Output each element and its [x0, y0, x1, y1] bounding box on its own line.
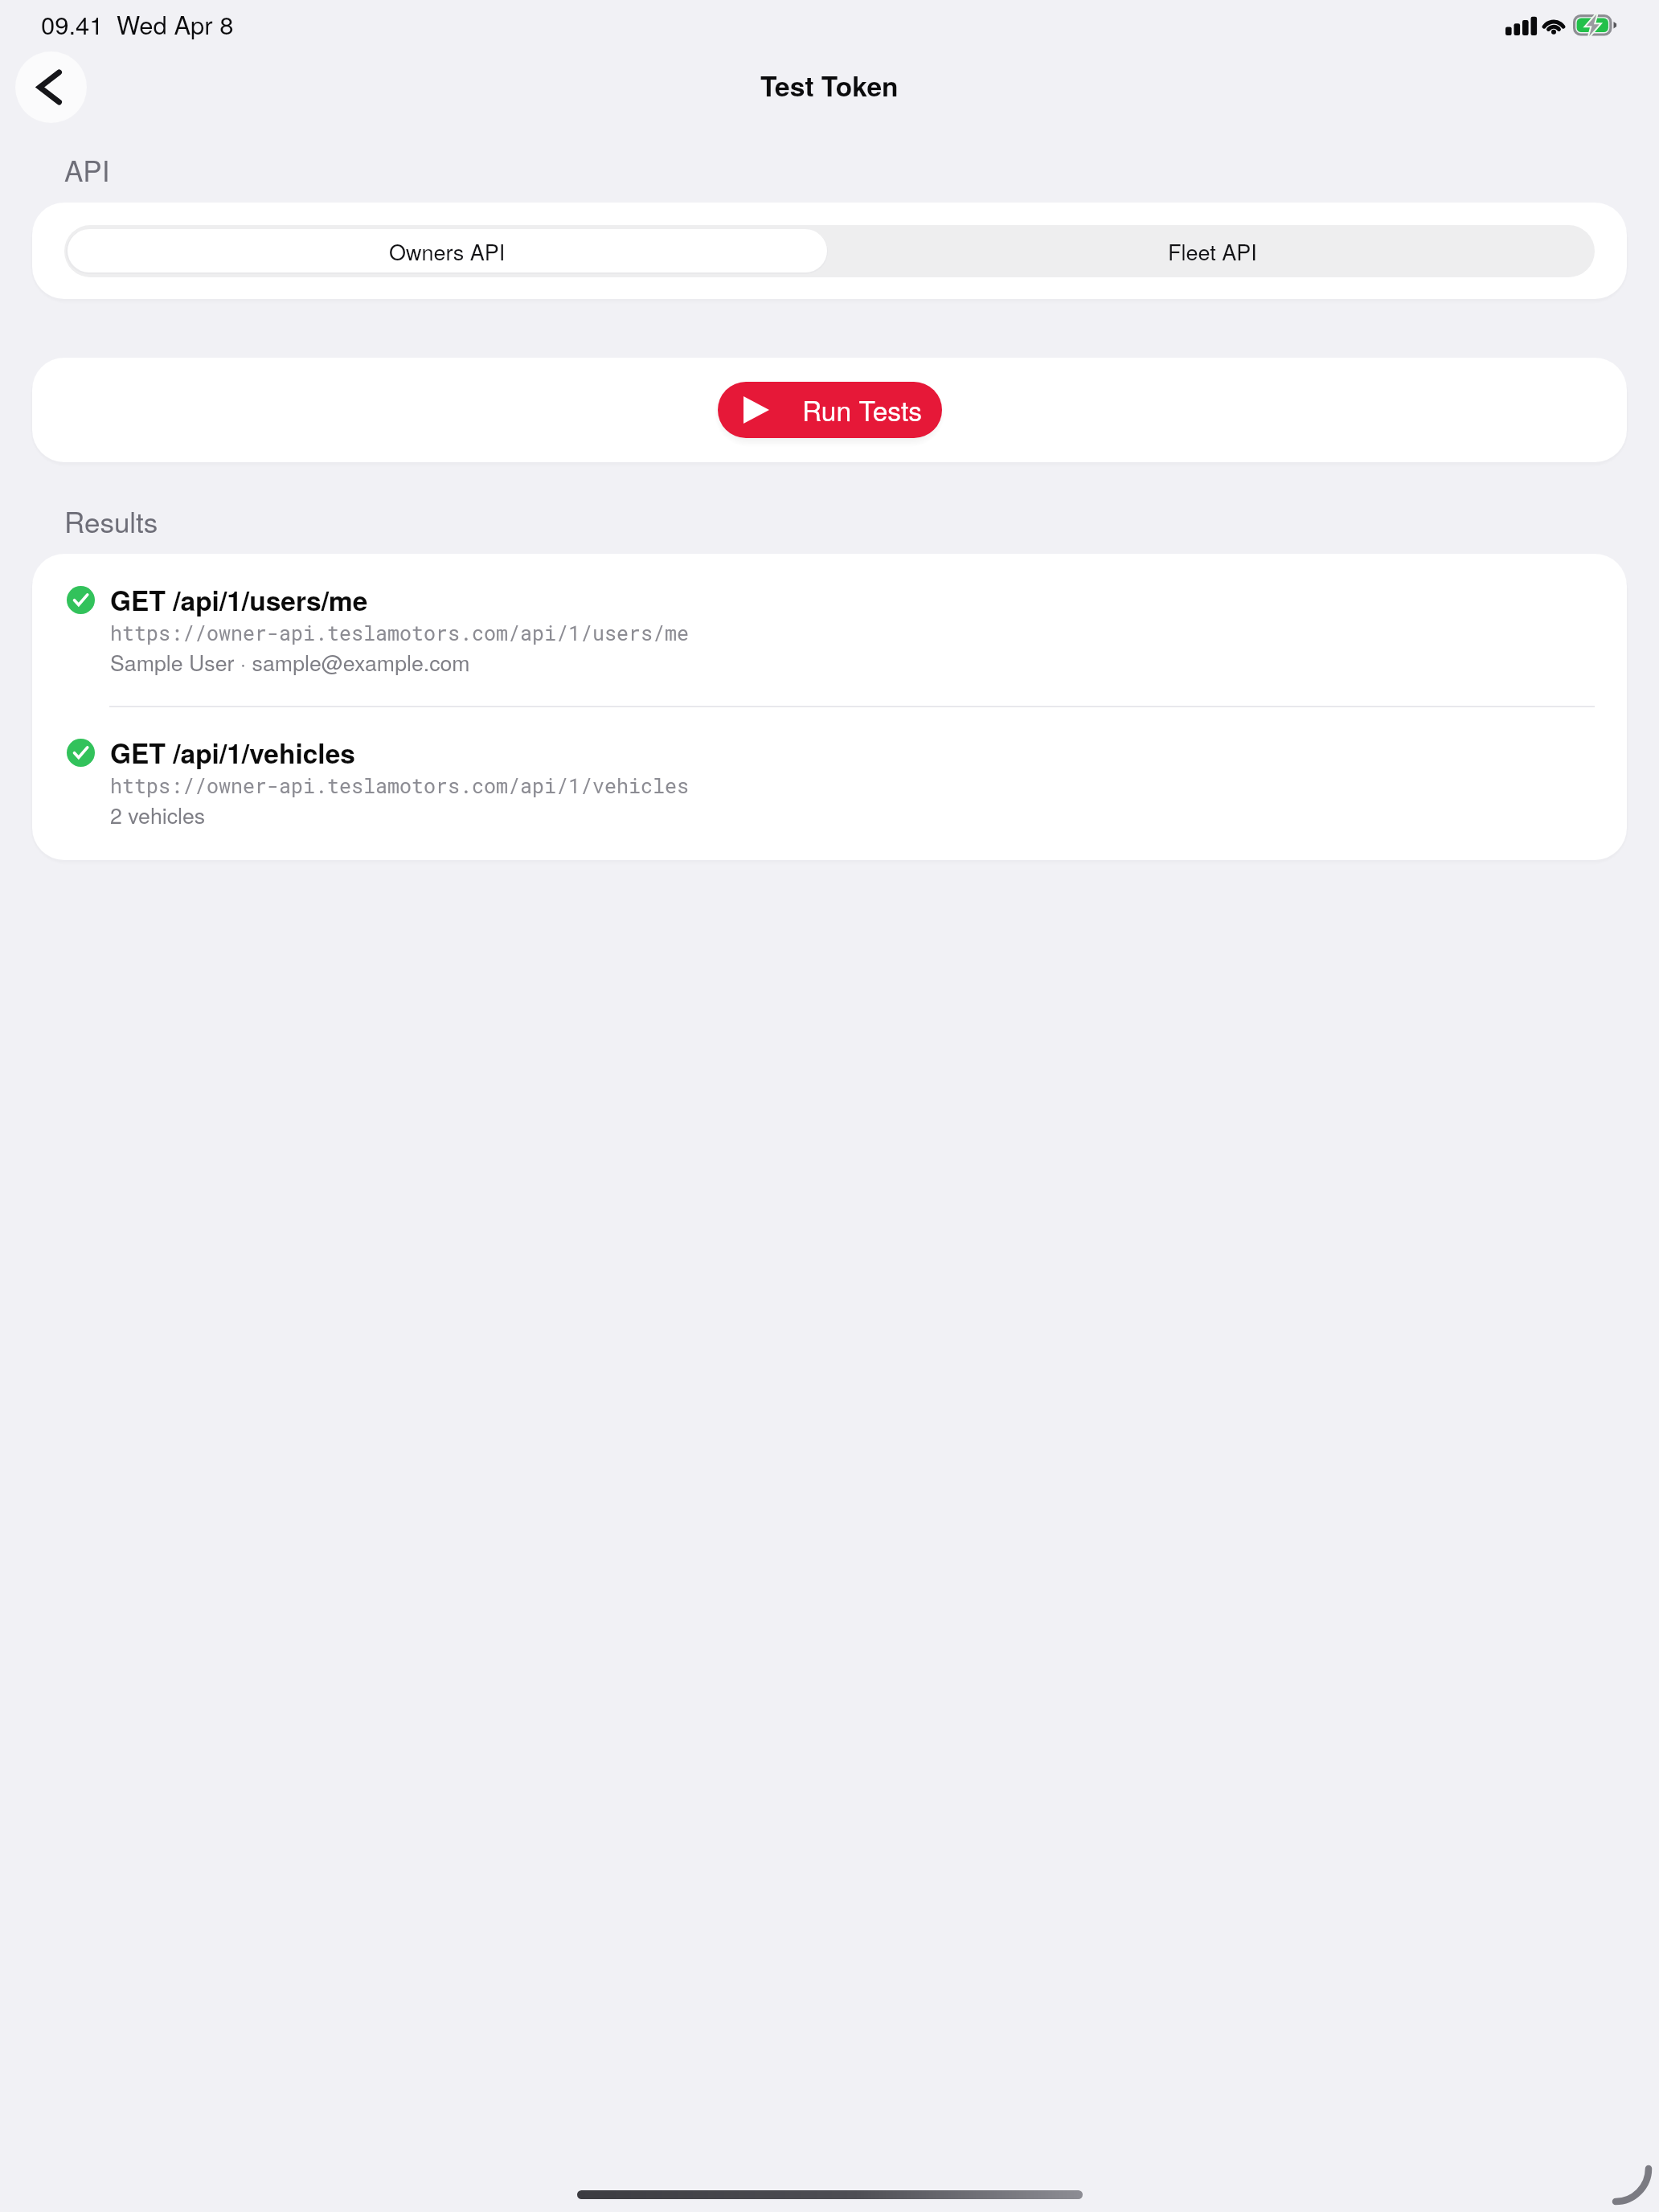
staticText: 09.41	[41, 6, 104, 41]
staticText: Owners API	[389, 236, 506, 267]
staticText: https://owner-api.teslamotors.com/api/1/…	[110, 620, 690, 646]
button[interactable]: GET /api/1/users/me	[32, 554, 1627, 707]
staticText: API	[64, 150, 110, 190]
staticText: Test Token	[760, 66, 899, 104]
staticText: Wed Apr 8	[117, 6, 234, 41]
staticText: Sample User · sample@example.com	[110, 646, 470, 677]
staticText: https://owner-api.teslamotors.com/api/1/…	[110, 772, 690, 799]
staticText: 2 vehicles	[110, 799, 206, 829]
staticText: Run Tests	[802, 391, 922, 429]
staticText: GET /api/1/users/me	[110, 580, 368, 619]
button[interactable]: Run Tests	[718, 382, 942, 438]
button[interactable]: Back	[15, 51, 87, 123]
staticText: Results	[64, 501, 158, 541]
staticText: Fleet API	[1168, 236, 1257, 267]
button[interactable]: Fleet API	[829, 225, 1595, 277]
button[interactable]: Owners API	[64, 225, 829, 277]
staticText: GET /api/1/vehicles	[110, 733, 355, 772]
button[interactable]: GET /api/1/vehicles	[32, 707, 1627, 859]
